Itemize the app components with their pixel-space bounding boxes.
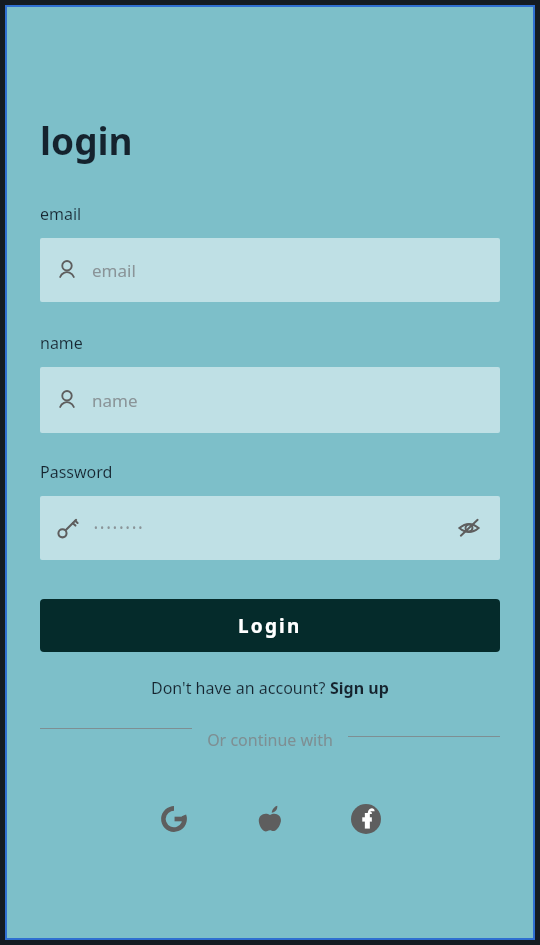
staticText: Login	[238, 613, 302, 639]
button[interactable]: name	[40, 367, 500, 433]
button[interactable]: email	[40, 238, 500, 302]
button[interactable]: Continue with Google	[152, 797, 196, 841]
button[interactable]: Toggle password visibility	[454, 513, 484, 543]
button[interactable]: Login	[40, 599, 500, 652]
staticText: email	[40, 203, 82, 225]
button[interactable]: Continue with Facebook	[344, 797, 388, 841]
staticText: Sign up	[330, 677, 389, 699]
staticText: Don't have an account?	[151, 677, 330, 699]
button[interactable]: Sign up	[330, 677, 389, 699]
staticText: name	[40, 332, 83, 354]
button[interactable]: Continue with Apple	[248, 797, 292, 841]
staticText: name	[92, 389, 138, 412]
staticText: login	[40, 115, 133, 165]
staticText: • • • • • • • •	[94, 521, 143, 535]
button[interactable]: • • • • • • • •	[40, 496, 500, 560]
staticText: email	[92, 259, 136, 282]
staticText: Password	[40, 461, 113, 483]
staticText: Or continue with	[207, 729, 333, 751]
